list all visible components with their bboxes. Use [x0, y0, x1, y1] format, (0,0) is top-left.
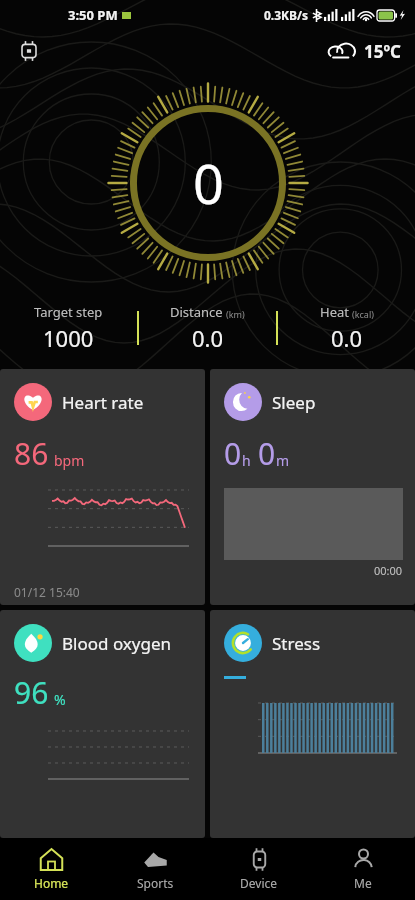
button[interactable]: Distance	[139, 303, 276, 353]
staticText: %	[54, 690, 66, 709]
staticText: 0	[224, 433, 242, 474]
staticText: 0.3KB/s	[264, 7, 309, 23]
staticText: Home	[34, 875, 69, 891]
staticText: bpm	[54, 451, 85, 470]
staticText: (kcal)	[352, 308, 374, 320]
button[interactable]: Heat	[278, 303, 415, 353]
staticText: m	[276, 451, 290, 470]
staticText: 00:00	[374, 563, 403, 578]
staticText: 0	[258, 433, 276, 474]
staticText: 0	[193, 146, 224, 220]
staticText: Sports	[137, 875, 174, 891]
staticText: 15ºC	[364, 40, 401, 63]
button[interactable]: Device	[207, 847, 311, 891]
button[interactable]: 15ºC	[328, 40, 401, 63]
staticText: 96	[14, 672, 49, 713]
staticText: Distance	[170, 303, 223, 321]
button[interactable]: My watch	[14, 36, 44, 66]
staticText: Target step	[34, 303, 103, 321]
staticText: 0.0	[331, 323, 363, 353]
button[interactable]: Me	[311, 847, 415, 891]
staticText: 86	[14, 433, 49, 474]
staticText: 0.0	[192, 323, 224, 353]
staticText: Sleep	[272, 391, 316, 414]
staticText: Heart rate	[62, 391, 144, 414]
staticText: Blood oxygen	[62, 632, 172, 655]
staticText: 01/12 15:40	[14, 584, 80, 600]
staticText: Stress	[272, 632, 321, 655]
button[interactable]: Heart rate	[0, 369, 205, 605]
button[interactable]: Blood oxygen	[0, 610, 205, 838]
staticText: (km)	[226, 308, 245, 320]
staticText: h	[242, 451, 251, 470]
staticText: 3:50 PM	[68, 6, 118, 24]
staticText: Device	[240, 875, 278, 891]
button[interactable]: Stress	[210, 610, 415, 838]
button[interactable]: Home	[0, 847, 103, 891]
button[interactable]: Sleep	[210, 369, 415, 605]
staticText: 1000	[43, 323, 94, 353]
staticText: Heat	[320, 303, 349, 321]
button[interactable]: Sports	[103, 847, 207, 891]
staticText: Me	[354, 875, 372, 891]
button[interactable]: Target step	[0, 303, 137, 353]
